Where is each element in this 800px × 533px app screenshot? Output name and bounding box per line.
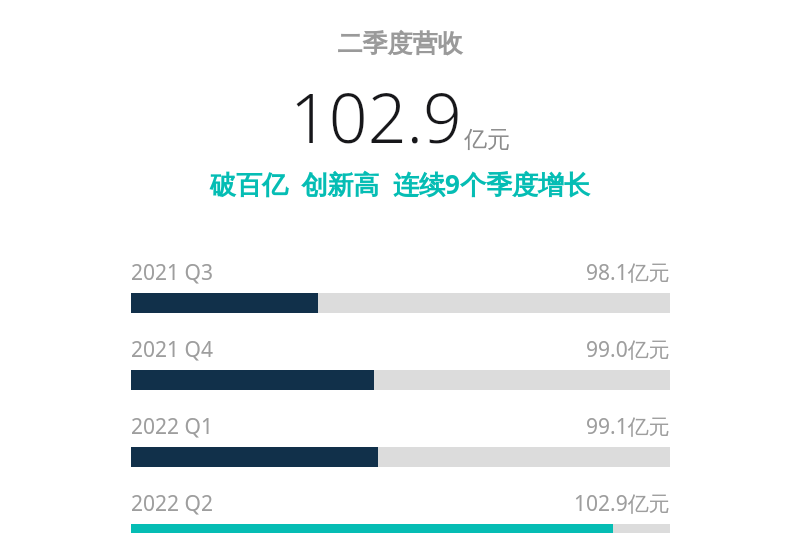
staticText: 二季度营收 <box>0 28 800 59</box>
staticText: 102.9亿元 <box>574 489 670 518</box>
staticText: 2021 Q3 <box>131 258 213 287</box>
staticText: 99.1亿元 <box>586 412 670 441</box>
staticText: 亿元 <box>464 125 510 154</box>
staticText: 102.9 <box>290 70 462 163</box>
button[interactable]: 2022 Q1 <box>131 412 670 467</box>
staticText: 2022 Q2 <box>131 489 213 518</box>
staticText: 破百亿 创新高 连续9个季度增长 <box>0 166 800 202</box>
button[interactable]: 2021 Q3 <box>131 258 670 313</box>
staticText: 98.1亿元 <box>586 258 670 287</box>
button[interactable]: 2022 Q2 <box>131 489 670 533</box>
staticText: 99.0亿元 <box>586 335 670 364</box>
staticText: 2022 Q1 <box>131 412 213 441</box>
button[interactable]: 2021 Q4 <box>131 335 670 390</box>
staticText: 2021 Q4 <box>131 335 213 364</box>
